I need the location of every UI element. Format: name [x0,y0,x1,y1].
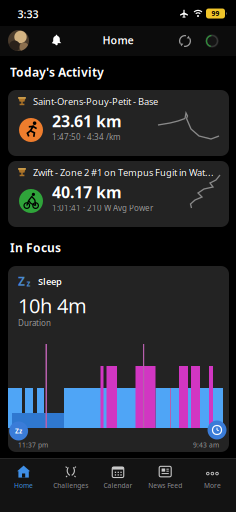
button[interactable]: Home [1,462,47,492]
staticText: Home [14,481,33,490]
staticText: Today's Activity [10,64,104,80]
staticText: 1:47:50 · 4:34 /km [52,132,120,142]
staticText: 1:01:41 · 210 W Avg Power [52,203,153,213]
button[interactable]: Device [205,34,219,48]
staticText: 3:33 [17,7,38,21]
button[interactable]: Calendar [95,462,141,492]
button[interactable]: Profile [8,30,29,51]
button[interactable]: Zwift - Zone 2 #1 on Tempus Fugit in Wat… [8,161,229,227]
button[interactable]: More [189,462,235,492]
staticText: More [204,481,221,490]
staticText: Zwift - Zone 2 #1 on Tempus Fugit in Wat… [33,166,214,179]
staticText: 23.61 km [52,110,122,132]
staticText: 11:37 pm [18,441,48,449]
staticText: 9:43 am [193,441,219,449]
staticText: Saint-Orens-Pouy-Petit - Base [33,95,158,108]
staticText: Challenges [53,481,88,490]
staticText: 10h 4m [18,292,87,319]
staticText: News Feed [148,481,182,490]
staticText: Zz [15,427,22,435]
button[interactable]: News Feed [142,462,188,492]
staticText: In Focus [10,239,61,255]
staticText: Calendar [103,481,132,490]
staticText: Sleep [38,275,62,288]
staticText: z [26,278,30,289]
staticText: 40.17 km [52,181,122,203]
staticText: Z [18,273,25,289]
staticText: 99 [211,9,219,18]
button[interactable]: Z [8,266,229,452]
staticText: Home [102,33,133,47]
button[interactable]: Sync [178,34,191,47]
button[interactable]: Notifications [51,34,62,45]
button[interactable]: Saint-Orens-Pouy-Petit - Base [8,90,229,156]
button[interactable]: Challenges [48,462,94,492]
staticText: Duration [18,318,51,328]
